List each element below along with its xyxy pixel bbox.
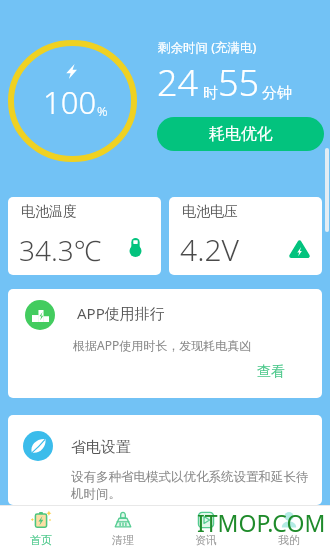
button[interactable]: APP使用排行	[8, 289, 322, 398]
staticText: 34.3℃	[19, 231, 102, 269]
staticText: 耗电优化	[209, 124, 273, 144]
staticText: 时	[203, 84, 218, 103]
staticText: 55	[218, 58, 260, 107]
button[interactable]: 电池电压	[169, 197, 322, 275]
button[interactable]: 首页	[0, 506, 82, 550]
staticText: 电池温度	[21, 203, 77, 221]
staticText: 100	[43, 81, 97, 123]
staticText: 我的	[278, 533, 300, 547]
staticText: 清理	[112, 533, 134, 547]
staticText: %	[97, 102, 108, 120]
staticText: 首页	[30, 533, 52, 547]
button[interactable]: 耗电优化	[157, 117, 324, 151]
other: Battery temperature	[129, 238, 142, 257]
staticText: 根据APP使用时长，发现耗电真凶	[73, 337, 252, 353]
staticText: APP使用排行	[77, 303, 165, 323]
staticText: 查看	[257, 363, 285, 381]
staticText: 分钟	[262, 84, 292, 103]
staticText: 24	[157, 58, 199, 107]
staticText: 设有多种省电模式以优化系统设置和延长待机时间。	[71, 469, 311, 501]
staticText: 电池电压	[182, 203, 238, 221]
staticText: 资讯	[195, 533, 217, 547]
other: Battery voltage	[290, 241, 309, 258]
staticText: 4.2V	[180, 229, 240, 270]
staticText: 省电设置	[71, 438, 131, 457]
staticText: ITMOP.COM	[197, 507, 326, 538]
button[interactable]: 清理	[82, 506, 164, 550]
staticText: 剩余时间 (充满电)	[158, 39, 257, 56]
button[interactable]: 电池温度	[8, 197, 161, 275]
button[interactable]: 省电设置	[8, 415, 322, 505]
button[interactable]: 资讯	[164, 506, 247, 550]
other: Charging	[66, 64, 77, 79]
button[interactable]: 我的	[247, 506, 330, 550]
